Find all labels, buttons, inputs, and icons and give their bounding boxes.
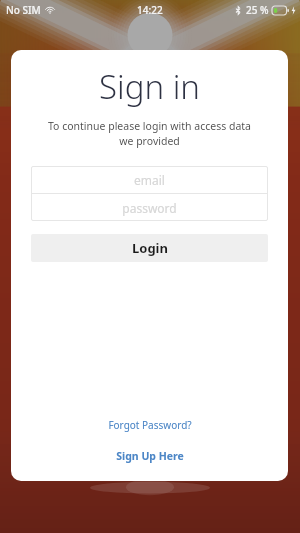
staticText: 25 % [246,3,269,17]
button[interactable]: Login [31,234,268,262]
staticText: Sign in [11,64,288,109]
staticText: Login [132,239,168,257]
button[interactable]: password [31,194,268,221]
staticText: To continue please login with access dat… [27,119,272,148]
staticText: 14:22 [137,3,163,17]
staticText: email [134,172,165,188]
button[interactable]: email [31,166,268,193]
button[interactable]: Sign Up Here [11,445,288,467]
staticText: Sign Up Here [116,449,184,463]
staticText: Forgot Password? [108,418,192,432]
staticText: No SIM [6,3,41,17]
staticText: password [122,200,177,216]
button[interactable]: Forgot Password? [11,414,288,436]
